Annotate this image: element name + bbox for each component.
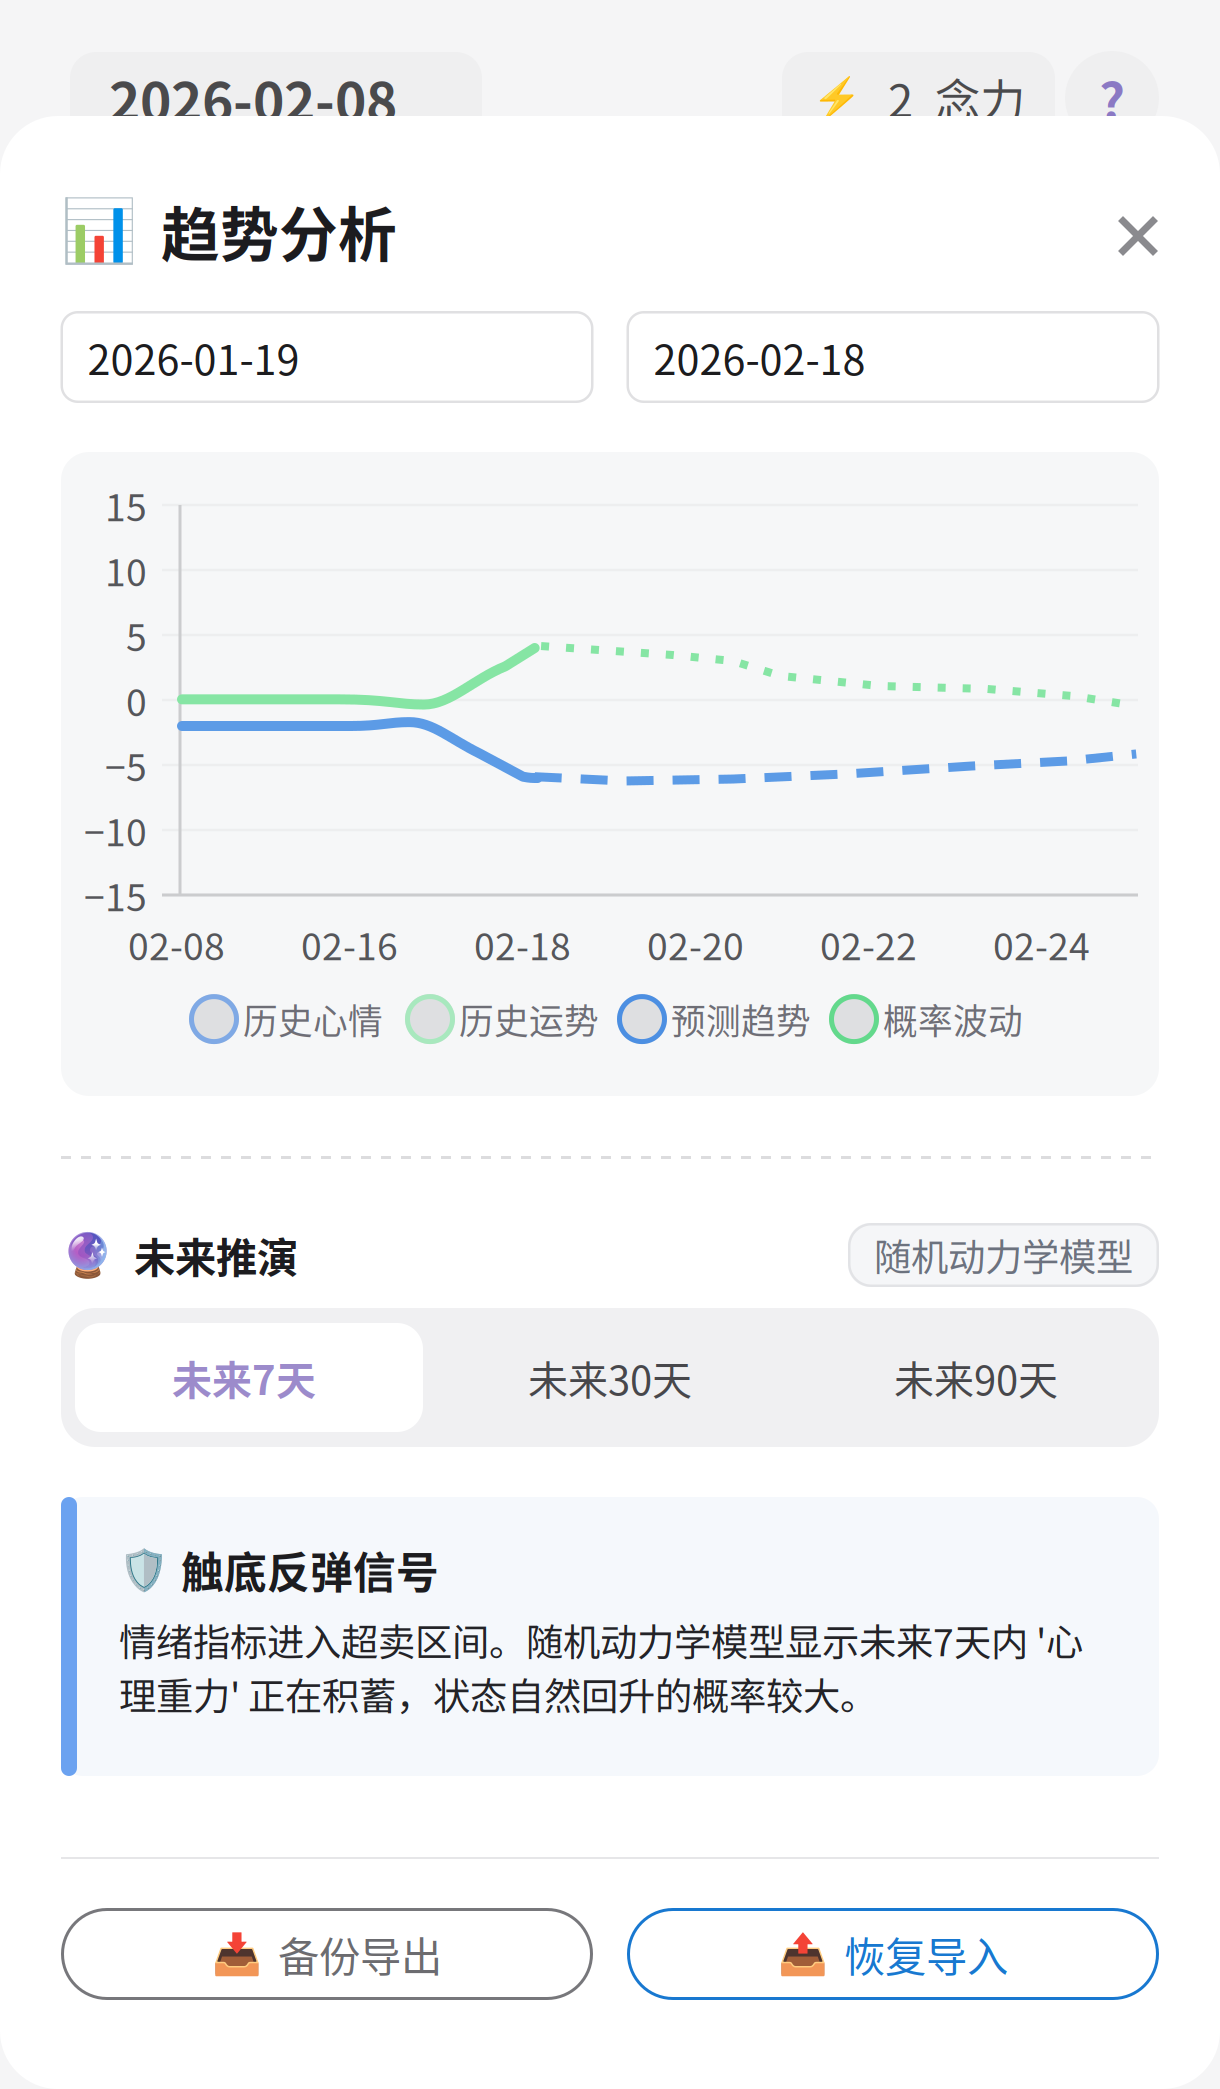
staticText: 🔮 — [61, 1230, 114, 1280]
staticText: 未来7天 — [172, 1348, 316, 1406]
staticText: 0 — [126, 673, 147, 727]
button[interactable]: 📥 — [61, 1908, 593, 2000]
staticText: ? — [1099, 61, 1125, 135]
staticText: 概率波动 — [883, 994, 1023, 1044]
staticText: 📤 — [778, 1931, 828, 1977]
staticText: −5 — [105, 738, 147, 792]
staticText: 02-22 — [820, 917, 917, 971]
button[interactable]: 2026-02-18 — [626, 311, 1159, 403]
button[interactable]: 📤 — [627, 1908, 1159, 2000]
staticText: 念力 — [935, 65, 1025, 131]
button[interactable]: 未来90天 — [793, 1308, 1159, 1447]
staticText: −15 — [84, 868, 147, 922]
button[interactable]: 2026-01-19 — [60, 311, 593, 403]
staticText: 2 — [888, 65, 913, 131]
staticText: 10 — [105, 543, 147, 597]
staticText: 未来90天 — [894, 1348, 1058, 1406]
staticText: 2026-02-08 — [109, 59, 397, 137]
staticText: 预测趋势 — [671, 994, 811, 1044]
staticText: 恢复导入 — [844, 1924, 1008, 1984]
staticText: 02-20 — [647, 917, 744, 971]
staticText: 备份导出 — [278, 1924, 442, 1984]
staticText: ⚡ — [812, 75, 862, 121]
staticText: 🛡 — [119, 1547, 169, 1593]
staticText: 5 — [126, 608, 147, 662]
button[interactable]: 未来30天 — [427, 1308, 793, 1447]
button[interactable]: 关闭 — [1105, 203, 1171, 269]
staticText: 02-16 — [301, 917, 398, 971]
staticText: 随机动力学模型 — [874, 1228, 1133, 1282]
staticText: 15 — [105, 478, 147, 532]
staticText: 📊 — [61, 195, 137, 267]
staticText: −10 — [84, 803, 147, 857]
staticText: 02-08 — [128, 917, 225, 971]
staticText: 历史运势 — [459, 994, 599, 1044]
staticText: 情绪指标进入超卖区间。随机动力学模型显示未来7天内 '心理重力' 正在积蓄，状态… — [119, 1613, 1083, 1721]
staticText: 02-24 — [993, 917, 1090, 971]
staticText: 未来推演 — [134, 1225, 298, 1285]
staticText: 2026-02-18 — [653, 327, 865, 387]
staticText: 2026-01-19 — [87, 327, 299, 387]
button[interactable]: 帮助 — [1065, 51, 1159, 145]
button[interactable]: 未来7天 — [61, 1308, 427, 1447]
staticText: 📥 — [212, 1931, 262, 1977]
staticText: 02-18 — [474, 917, 571, 971]
staticText: 未来30天 — [528, 1348, 692, 1406]
staticText: 触底反弹信号 — [181, 1539, 439, 1601]
staticText: 趋势分析 — [161, 188, 397, 273]
staticText: 历史心情 — [243, 994, 383, 1044]
